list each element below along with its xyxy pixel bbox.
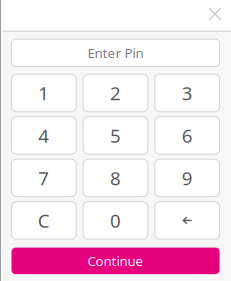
- button[interactable]: 4: [11, 117, 76, 154]
- staticText: 7: [38, 166, 49, 190]
- staticText: 5: [110, 123, 121, 148]
- staticText: 3: [182, 81, 193, 105]
- button[interactable]: 8: [83, 159, 148, 197]
- button[interactable]: 6: [155, 117, 219, 154]
- staticText: C: [38, 208, 50, 233]
- button[interactable]: Close: [203, 2, 227, 26]
- button[interactable]: 9: [155, 159, 219, 197]
- button[interactable]: Delete: [155, 202, 219, 239]
- staticText: Continue: [87, 252, 143, 270]
- button[interactable]: 7: [11, 159, 76, 197]
- staticText: 0: [110, 208, 121, 233]
- staticText: Enter Pin: [87, 44, 143, 62]
- staticText: 6: [182, 123, 193, 148]
- button[interactable]: Continue: [11, 248, 219, 274]
- button[interactable]: 2: [83, 74, 148, 112]
- staticText: 9: [182, 166, 193, 190]
- staticText: 2: [110, 81, 121, 105]
- button[interactable]: C: [11, 202, 76, 239]
- button[interactable]: 1: [11, 74, 76, 112]
- staticText: 1: [38, 81, 49, 105]
- button[interactable]: 0: [83, 202, 148, 239]
- staticText: 4: [38, 123, 49, 148]
- button[interactable]: 5: [83, 117, 148, 154]
- staticText: 8: [110, 166, 121, 190]
- button[interactable]: 3: [155, 74, 219, 112]
